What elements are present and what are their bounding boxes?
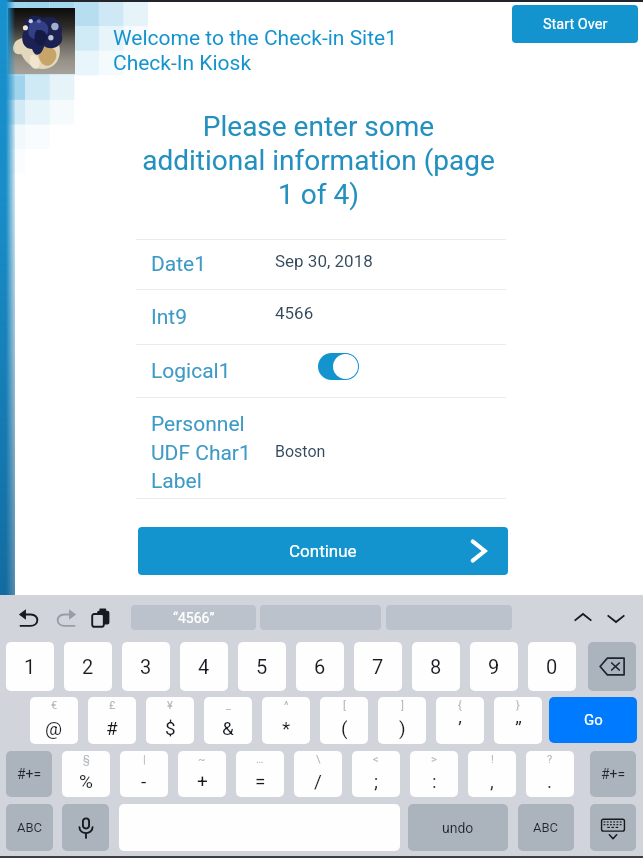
button[interactable]: undo xyxy=(408,804,508,851)
staticText: Personnel UDF Char1 Label xyxy=(151,412,251,493)
button[interactable]: Next field xyxy=(604,606,628,630)
button[interactable]: Start Over xyxy=(512,5,638,43)
button[interactable]: £ xyxy=(88,697,136,744)
staticText: - xyxy=(141,770,147,792)
staticText: 1 xyxy=(24,655,36,678)
staticText: ¥ xyxy=(167,699,173,712)
staticText: { xyxy=(458,699,462,712)
button[interactable]: Undo xyxy=(16,605,42,631)
staticText: 9 xyxy=(488,655,500,678)
staticText: … xyxy=(256,753,264,766)
button[interactable]: Paste xyxy=(88,605,114,631)
button[interactable]: 5 xyxy=(238,642,286,691)
staticText: € xyxy=(51,699,58,712)
button[interactable]: ¥ xyxy=(146,697,194,744)
button[interactable]: ] xyxy=(378,697,426,744)
button[interactable]: … xyxy=(236,751,284,797)
staticText: 6 xyxy=(314,655,326,678)
button[interactable]: ~ xyxy=(178,751,226,797)
staticText: Welcome to the Check-in Site1 xyxy=(113,26,398,51)
staticText: ’ xyxy=(458,717,462,739)
button[interactable]: > xyxy=(410,751,458,797)
button[interactable]: 8 xyxy=(412,642,460,691)
button[interactable]: _ xyxy=(204,697,252,744)
staticText: § xyxy=(83,753,90,766)
button[interactable]: 4 xyxy=(180,642,228,691)
staticText: _ xyxy=(226,699,231,712)
staticText: @ xyxy=(45,717,63,739)
button[interactable]: } xyxy=(494,697,542,744)
staticText: Date1 xyxy=(151,252,207,277)
staticText: 2 xyxy=(82,655,94,678)
staticText: Continue xyxy=(289,541,357,561)
staticText: #+= xyxy=(17,766,42,782)
staticText: “4566” xyxy=(173,610,215,626)
button[interactable]: ^ xyxy=(262,697,310,744)
staticText: / xyxy=(314,770,322,792)
button[interactable]: | xyxy=(120,751,168,797)
staticText: Start Over xyxy=(543,16,608,33)
staticText: 4566 xyxy=(275,303,314,323)
button[interactable]: Date1 xyxy=(136,240,506,289)
button[interactable]: 3 xyxy=(122,642,170,691)
button[interactable]: Continue xyxy=(138,527,508,575)
button[interactable]: Logical1 xyxy=(136,345,506,397)
button[interactable]: “4566” xyxy=(131,605,256,630)
button[interactable]: 1 xyxy=(6,642,54,691)
staticText: ! xyxy=(491,753,494,766)
staticText: ; xyxy=(374,770,379,792)
button[interactable]: 6 xyxy=(296,642,344,691)
button[interactable]: Dictate xyxy=(62,804,109,851)
staticText: \ xyxy=(316,753,321,766)
button[interactable]: 2 xyxy=(64,642,112,691)
staticText: ABC xyxy=(17,820,43,835)
staticText: undo xyxy=(442,820,474,836)
staticText: * xyxy=(282,717,291,739)
staticText: ( xyxy=(341,717,348,739)
button[interactable]: { xyxy=(436,697,484,744)
staticText: ? xyxy=(547,753,553,766)
button[interactable]: € xyxy=(30,697,78,744)
button[interactable]: #+= xyxy=(590,751,636,797)
button[interactable]: Int9 xyxy=(136,290,506,344)
button[interactable]: \ xyxy=(294,751,342,797)
staticText: £ xyxy=(109,699,116,712)
staticText: [ xyxy=(343,699,346,712)
button[interactable]: ? xyxy=(526,751,574,797)
button[interactable]: Redo xyxy=(53,605,79,631)
button[interactable]: § xyxy=(62,751,110,797)
staticText: ^ xyxy=(284,699,289,712)
staticText: ] xyxy=(401,699,404,712)
staticText: 5 xyxy=(256,655,268,678)
button[interactable]: ABC xyxy=(518,804,574,851)
button[interactable]: #+= xyxy=(6,751,52,797)
staticText: % xyxy=(79,770,93,792)
button[interactable]: Backspace xyxy=(588,642,636,691)
button[interactable]: 0 xyxy=(528,642,576,691)
button[interactable]: Logical1 toggle xyxy=(318,353,359,380)
button[interactable]: 7 xyxy=(354,642,402,691)
button[interactable]: Go xyxy=(549,697,637,743)
button[interactable]: ! xyxy=(468,751,516,797)
staticText: , xyxy=(490,770,494,792)
staticText: & xyxy=(222,717,234,739)
button[interactable]: Personnel UDF Char1 Label xyxy=(136,398,506,498)
staticText: ) xyxy=(399,717,406,739)
staticText: Go xyxy=(584,711,603,729)
button[interactable]: [ xyxy=(320,697,368,744)
staticText: > xyxy=(431,753,437,766)
button[interactable]: Previous field xyxy=(571,606,595,630)
staticText: Boston xyxy=(275,442,326,461)
staticText: : xyxy=(432,770,437,792)
button[interactable]: 9 xyxy=(470,642,518,691)
staticText: Check-In Kiosk xyxy=(113,51,252,76)
button[interactable]: < xyxy=(352,751,400,797)
staticText: $ xyxy=(165,717,176,739)
staticText: = xyxy=(255,770,266,792)
button[interactable]: Hide keyboard xyxy=(590,804,636,851)
button[interactable]: ABC xyxy=(6,804,53,851)
staticText: Sep 30, 2018 xyxy=(275,251,373,271)
